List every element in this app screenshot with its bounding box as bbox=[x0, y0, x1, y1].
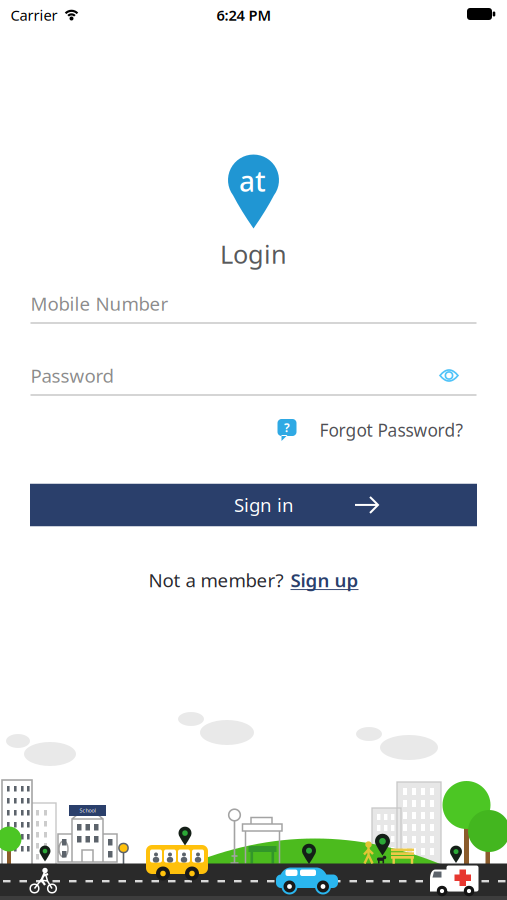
button[interactable]: Sign up bbox=[290, 568, 358, 592]
button[interactable]: Mobile Number bbox=[30, 283, 476, 324]
staticText: at bbox=[239, 162, 266, 200]
staticText: Login bbox=[220, 237, 287, 271]
staticText: ? bbox=[284, 419, 290, 435]
staticText: 6:24 PM bbox=[216, 5, 271, 25]
staticText: Mobile Number bbox=[30, 291, 168, 316]
staticText: Forgot Password? bbox=[319, 418, 463, 441]
staticText: Password bbox=[30, 363, 113, 388]
staticText: Carrier bbox=[10, 5, 57, 25]
staticText: Not a member? bbox=[148, 568, 283, 592]
button[interactable] bbox=[439, 369, 459, 382]
button[interactable]: ? bbox=[277, 417, 463, 443]
button[interactable]: Sign in bbox=[30, 484, 477, 526]
staticText: Sign up bbox=[290, 568, 358, 592]
staticText: Sign in bbox=[234, 492, 294, 517]
button[interactable]: Password bbox=[30, 355, 476, 396]
staticText: School bbox=[79, 807, 95, 814]
